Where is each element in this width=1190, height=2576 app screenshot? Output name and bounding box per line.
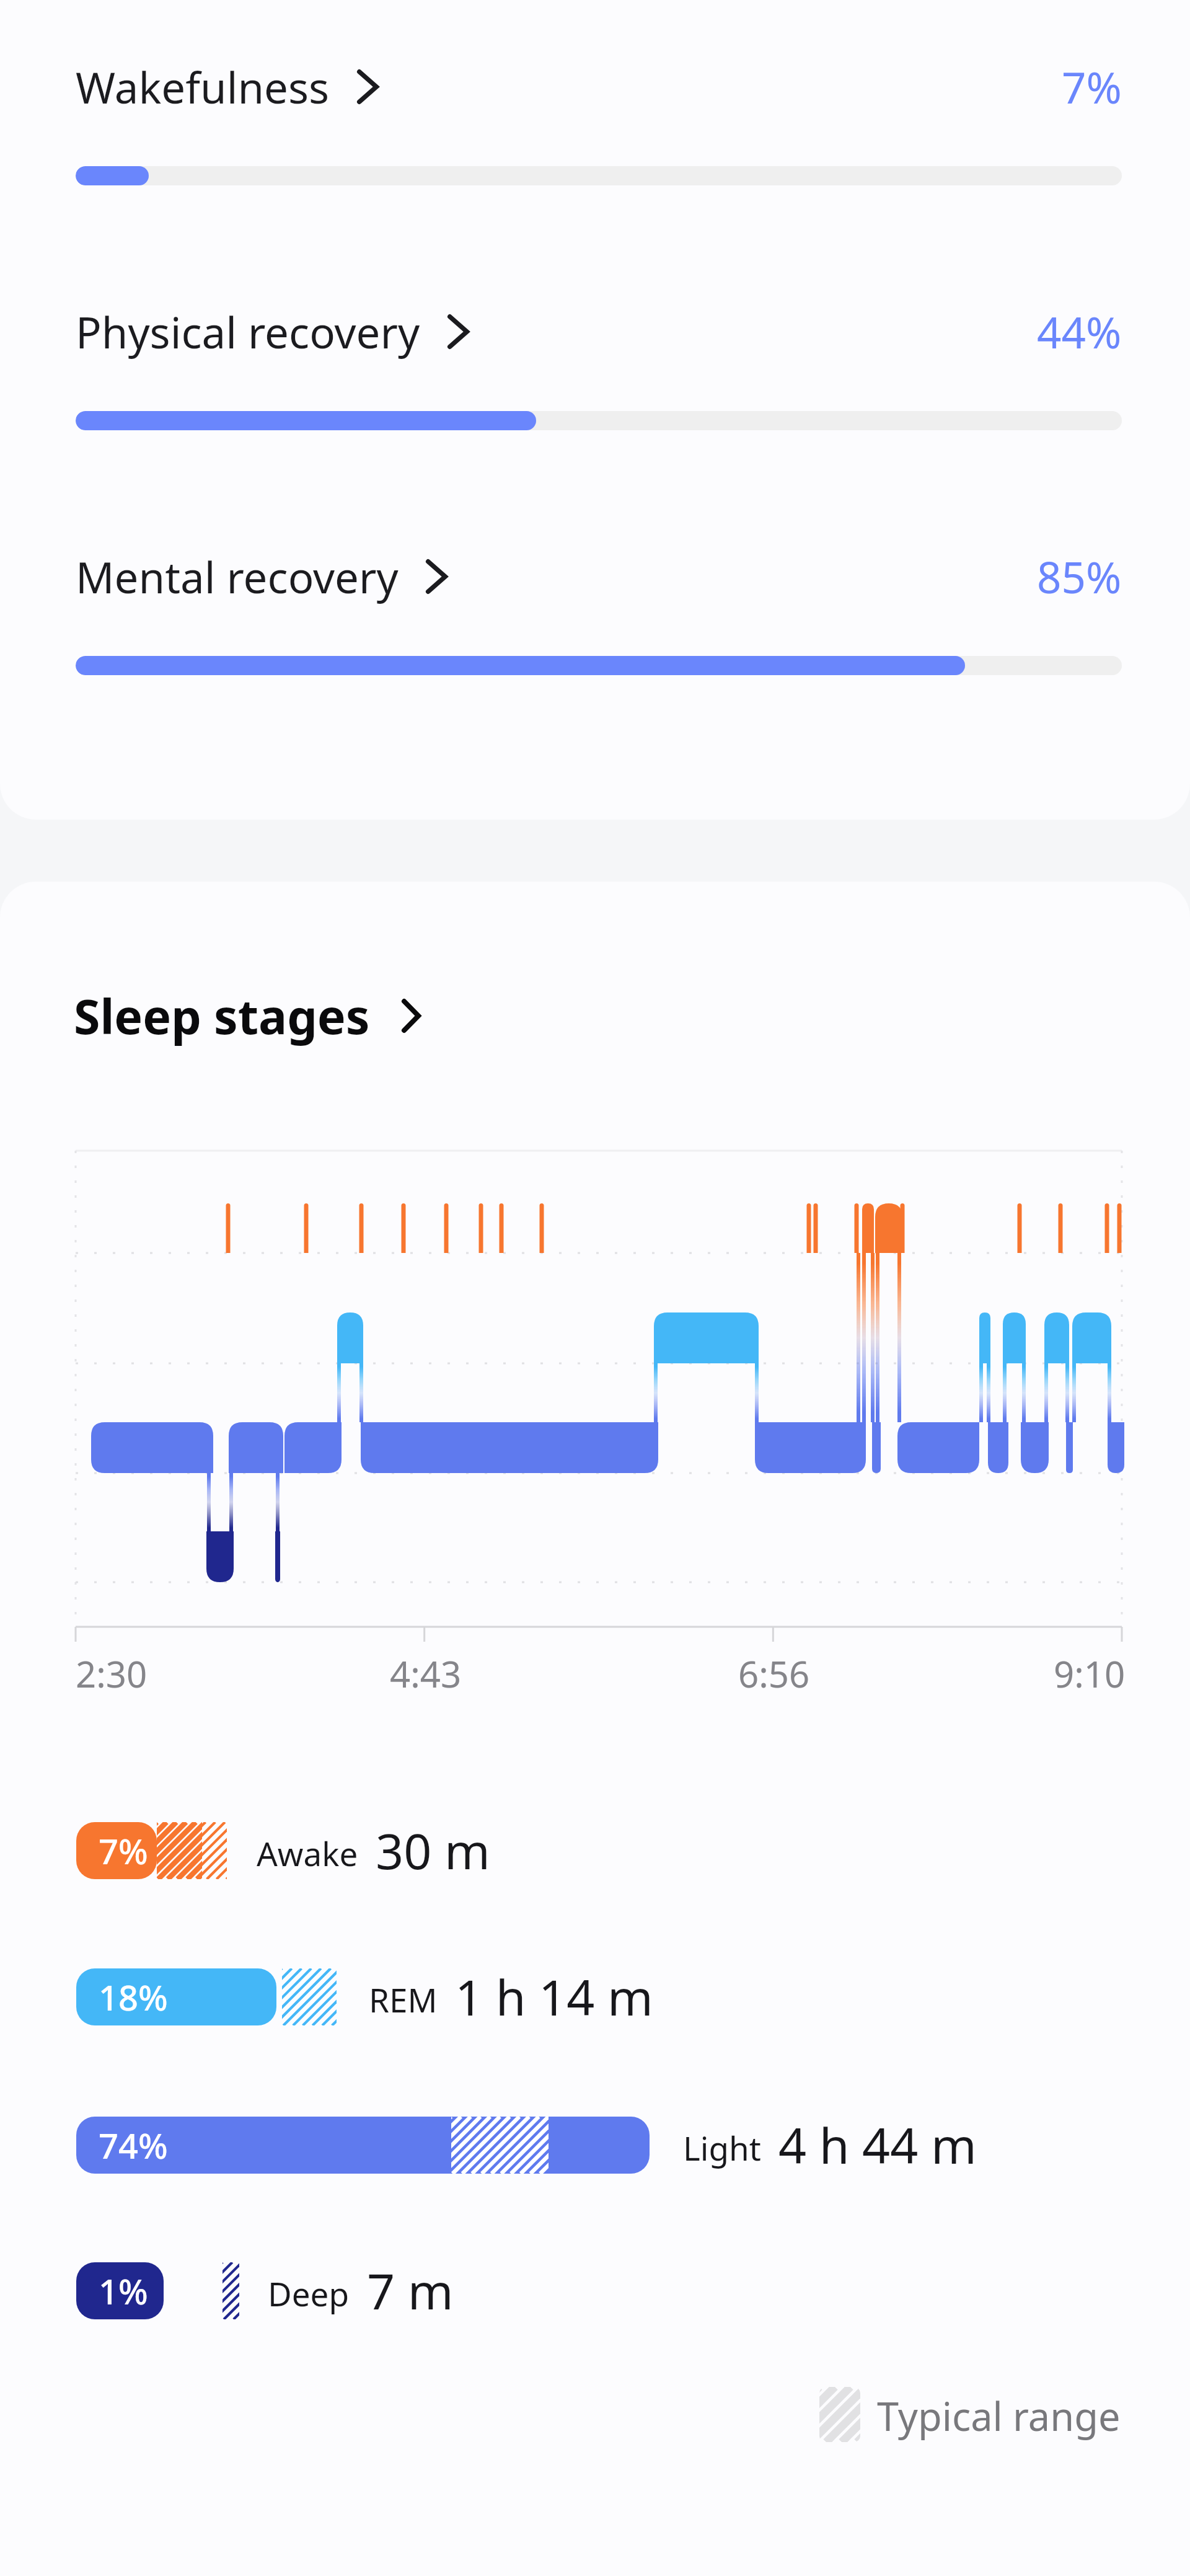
staticText: 7% — [1062, 58, 1122, 116]
staticText: 7% — [99, 1827, 148, 1874]
staticText: 1% — [99, 2267, 148, 2314]
staticText: 44% — [1037, 303, 1122, 361]
staticText: REM — [369, 1977, 438, 2022]
button[interactable]: 74% — [76, 2117, 650, 2174]
button[interactable]: Wakefulness — [76, 58, 1122, 185]
button[interactable]: Physical recovery — [76, 303, 1122, 430]
staticText: 7 m — [367, 2257, 454, 2324]
staticText: 18% — [99, 1973, 168, 2021]
staticText: 85% — [1037, 547, 1122, 606]
staticText: Physical recovery — [76, 303, 420, 361]
staticText: 4:43 — [390, 1649, 462, 1698]
staticText: Deep — [268, 2271, 350, 2316]
staticText: 4 h 44 m — [778, 2112, 977, 2179]
button[interactable]: Sleep stages — [74, 983, 421, 1048]
staticText: 9:10 — [1054, 1649, 1126, 1698]
staticText: Mental recovery — [76, 547, 399, 606]
staticText: Wakefulness — [76, 58, 330, 116]
staticText: Typical range — [877, 2389, 1121, 2443]
staticText: Light — [683, 2125, 761, 2170]
staticText: 74% — [99, 2122, 168, 2169]
staticText: 1 h 14 m — [455, 1963, 653, 2030]
staticText: 6:56 — [738, 1649, 810, 1698]
button[interactable]: 18% — [76, 1968, 337, 2025]
staticText: Sleep stages — [74, 983, 370, 1048]
staticText: Awake — [257, 1831, 358, 1875]
button[interactable]: Mental recovery — [76, 547, 1122, 675]
staticText: 2:30 — [76, 1649, 148, 1698]
staticText: 30 m — [376, 1817, 490, 1884]
button[interactable]: 1% — [76, 2262, 239, 2319]
button[interactable]: 7% — [76, 1822, 227, 1879]
